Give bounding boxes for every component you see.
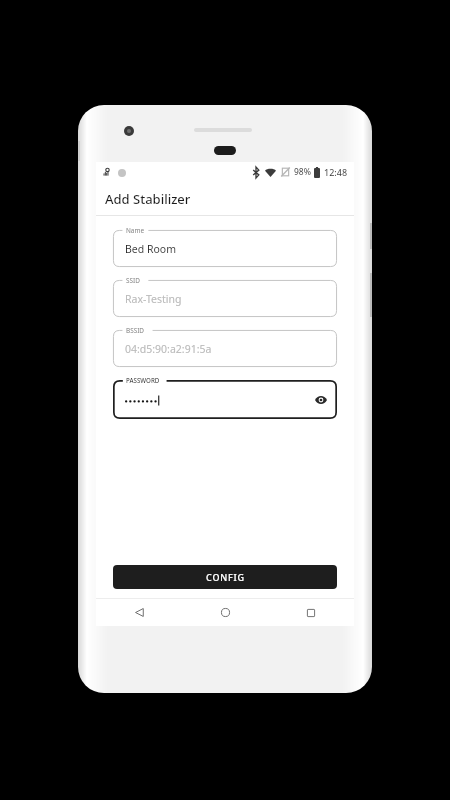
staticText: 04:d5:90:a2:91:5a bbox=[125, 342, 212, 356]
button[interactable]: PASSWORD bbox=[113, 380, 337, 419]
button[interactable]: Show password bbox=[313, 392, 329, 408]
staticText: Bed Room bbox=[125, 242, 176, 256]
staticText: Add Stabilizer bbox=[105, 190, 191, 208]
button[interactable]: BSSID bbox=[113, 330, 337, 367]
staticText: 98% bbox=[294, 166, 311, 178]
staticText: Name bbox=[126, 226, 145, 235]
button[interactable]: Recents bbox=[268, 599, 354, 626]
staticText: CONFIG bbox=[206, 571, 245, 583]
button[interactable]: CONFIG bbox=[113, 565, 337, 589]
button[interactable]: Name bbox=[113, 230, 337, 267]
staticText: PASSWORD bbox=[126, 376, 160, 384]
staticText: BSSID bbox=[126, 326, 145, 335]
staticText: 12:48 bbox=[324, 166, 348, 178]
button[interactable]: Back bbox=[96, 599, 182, 626]
staticText: Rax-Testing bbox=[125, 292, 182, 306]
button[interactable]: SSID bbox=[113, 280, 337, 317]
button[interactable]: Home bbox=[182, 599, 268, 626]
staticText: SSID bbox=[126, 276, 140, 285]
